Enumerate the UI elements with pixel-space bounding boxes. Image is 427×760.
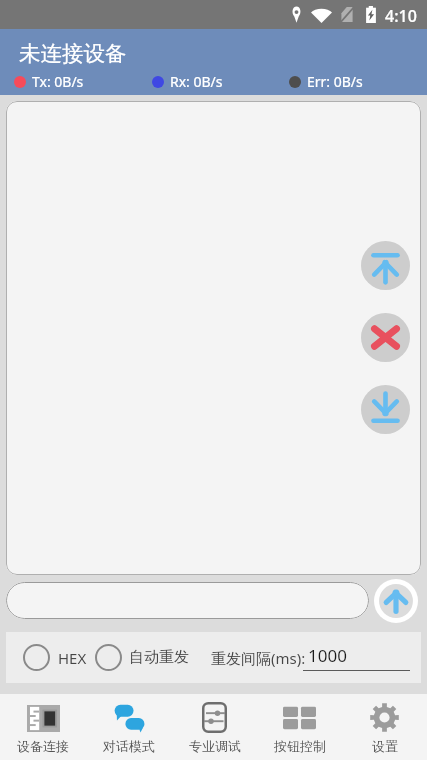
staticText: 重发间隔(ms):: [211, 648, 306, 668]
button[interactable]: Scroll to bottom: [361, 385, 410, 434]
staticText: HEX: [58, 648, 87, 668]
button[interactable]: 按钮控制: [257, 694, 342, 760]
staticText: Err: 0B/s: [307, 72, 363, 91]
staticText: 设置: [372, 738, 398, 754]
button[interactable]: 对话模式: [86, 694, 172, 760]
button[interactable]: Scroll to top: [361, 241, 410, 290]
button[interactable]: Clear: [361, 313, 410, 362]
button[interactable]: [6, 582, 369, 619]
staticText: 1000: [308, 644, 347, 667]
button[interactable]: HEX: [23, 632, 87, 683]
button[interactable]: 设置: [342, 694, 427, 760]
staticText: 按钮控制: [274, 738, 326, 754]
staticText: 自动重发: [129, 648, 189, 667]
staticText: 设备连接: [17, 738, 69, 754]
button[interactable]: Send: [374, 579, 418, 623]
staticText: 未连接设备: [19, 40, 127, 67]
button[interactable]: 设备连接: [0, 694, 86, 760]
staticText: 对话模式: [103, 738, 155, 754]
button[interactable]: 自动重发: [95, 632, 189, 683]
button[interactable]: 1000: [303, 644, 410, 667]
staticText: Tx: 0B/s: [32, 72, 84, 91]
staticText: Rx: 0B/s: [170, 72, 223, 91]
staticText: 4:10: [385, 5, 417, 27]
staticText: 专业调试: [189, 738, 241, 754]
button[interactable]: 专业调试: [172, 694, 257, 760]
